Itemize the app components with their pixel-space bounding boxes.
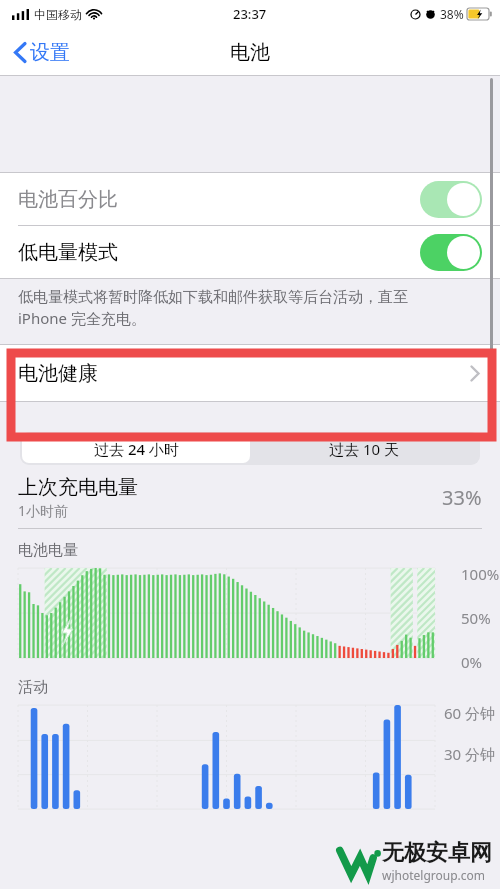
staticText: 50% bbox=[461, 608, 491, 628]
staticText: 23:37 bbox=[233, 5, 267, 23]
staticText: 38% bbox=[440, 6, 464, 22]
staticText: 33% bbox=[442, 484, 482, 511]
staticText: 过去 24 小时 bbox=[94, 439, 179, 459]
staticText: 电池百分比 bbox=[18, 187, 118, 212]
staticText: 60 分钟 bbox=[444, 703, 496, 723]
staticText: 30 分钟 bbox=[444, 744, 496, 764]
button[interactable]: 电池百分比 bbox=[0, 173, 500, 225]
staticText: 0% bbox=[461, 652, 483, 672]
staticText: wjhotelgroup.com bbox=[382, 867, 486, 883]
staticText: 中国移动 bbox=[34, 7, 82, 22]
staticText: 电池电量 bbox=[18, 541, 78, 560]
staticText: 100% bbox=[461, 564, 500, 584]
button[interactable]: 过去 24 小时 bbox=[22, 434, 250, 463]
staticText: 活动 bbox=[18, 678, 48, 697]
staticText: 1小时前 bbox=[18, 501, 69, 520]
staticText: 低电量模式将暂时降低如下载和邮件获取等后台活动，直至 iPhone 完全充电。 bbox=[18, 288, 408, 328]
button[interactable]: 低电量模式 bbox=[0, 226, 500, 278]
staticText: 电池 bbox=[230, 40, 270, 65]
button[interactable]: 设置 bbox=[10, 36, 74, 69]
staticText: 无极安卓网 bbox=[382, 839, 492, 867]
staticText: 上次充电电量 bbox=[18, 475, 138, 500]
staticText: 过去 10 天 bbox=[329, 439, 399, 459]
button[interactable]: 电池健康 bbox=[0, 345, 500, 401]
staticText: 电池健康 bbox=[18, 361, 98, 386]
staticText: 低电量模式 bbox=[18, 240, 118, 265]
button[interactable]: 过去 10 天 bbox=[250, 434, 478, 463]
staticText: 设置 bbox=[30, 40, 70, 65]
